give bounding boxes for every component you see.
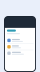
button[interactable] xyxy=(6,37,33,43)
button[interactable] xyxy=(6,50,33,56)
button[interactable] xyxy=(6,44,33,50)
